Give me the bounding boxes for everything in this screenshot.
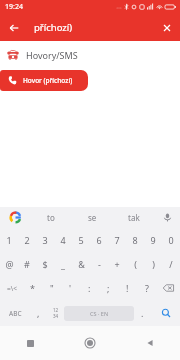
button[interactable]: 5 bbox=[72, 228, 90, 252]
button[interactable]: + bbox=[108, 252, 126, 276]
button[interactable]: =\< bbox=[0, 276, 23, 300]
button[interactable]: 7 bbox=[108, 228, 126, 252]
button[interactable]: 9 bbox=[144, 228, 162, 252]
staticText: & bbox=[78, 258, 85, 270]
staticText: se bbox=[88, 212, 97, 223]
staticText: 8 bbox=[132, 234, 138, 246]
staticText: 19:24 bbox=[5, 2, 23, 12]
staticText: Hovor (příchozí) bbox=[23, 76, 73, 85]
staticText: # bbox=[24, 258, 30, 270]
button[interactable]: ( bbox=[126, 252, 144, 276]
staticText: =\< bbox=[7, 284, 17, 293]
button[interactable]: ) bbox=[144, 252, 162, 276]
button[interactable]: @ bbox=[0, 252, 18, 276]
staticText: to bbox=[47, 212, 55, 223]
button[interactable]: ' bbox=[61, 276, 80, 300]
button[interactable]: Voice input bbox=[154, 207, 180, 228]
staticText: ( bbox=[134, 258, 137, 270]
staticText: ' bbox=[69, 282, 72, 294]
staticText: CS · EN bbox=[90, 310, 109, 317]
button[interactable]: 6 bbox=[90, 228, 108, 252]
button[interactable]: Back bbox=[120, 326, 180, 360]
staticText: * bbox=[30, 282, 35, 294]
button[interactable]: 0 bbox=[162, 228, 180, 252]
button[interactable]: ? bbox=[137, 276, 156, 300]
staticText: : bbox=[88, 282, 91, 294]
button[interactable]: . bbox=[134, 300, 151, 326]
button[interactable]: Backspace bbox=[156, 276, 180, 300]
staticText: 7 bbox=[114, 234, 120, 246]
staticText: 3 bbox=[42, 234, 48, 246]
staticText: ABC bbox=[9, 309, 22, 318]
staticText: " bbox=[50, 282, 54, 294]
button[interactable]: 3 bbox=[36, 228, 54, 252]
button[interactable]: Google bbox=[0, 207, 30, 228]
button[interactable]: Hovory/SMS bbox=[0, 46, 180, 64]
staticText: 9 bbox=[150, 234, 156, 246]
staticText: 34 bbox=[53, 313, 59, 319]
staticText: tak bbox=[128, 212, 140, 223]
button[interactable]: - bbox=[90, 252, 108, 276]
button[interactable]: Home bbox=[60, 326, 120, 360]
button[interactable]: _ bbox=[54, 252, 72, 276]
button[interactable]: Clear bbox=[153, 14, 180, 41]
button[interactable]: 1 bbox=[0, 228, 18, 252]
staticText: 4 bbox=[60, 234, 66, 246]
button[interactable]: Back bbox=[0, 14, 27, 41]
button[interactable]: ; bbox=[99, 276, 118, 300]
button[interactable]: : bbox=[80, 276, 99, 300]
staticText: / bbox=[169, 258, 173, 270]
staticText: 12 bbox=[53, 307, 59, 313]
button[interactable]: CS · EN bbox=[64, 306, 134, 321]
staticText: 5 bbox=[78, 234, 84, 246]
button[interactable]: Hovor (příchozí) bbox=[0, 70, 88, 91]
button[interactable]: to bbox=[30, 207, 72, 228]
staticText: $ bbox=[42, 258, 48, 270]
staticText: 0 bbox=[168, 234, 174, 246]
button[interactable]: $ bbox=[36, 252, 54, 276]
staticText: příchozí) bbox=[34, 21, 73, 34]
button[interactable]: # bbox=[18, 252, 36, 276]
staticText: ) bbox=[152, 258, 155, 270]
button[interactable]: / bbox=[162, 252, 180, 276]
button[interactable]: tak bbox=[113, 207, 154, 228]
button[interactable]: * bbox=[23, 276, 42, 300]
button[interactable]: 8 bbox=[126, 228, 144, 252]
button[interactable]: & bbox=[72, 252, 90, 276]
staticText: 1 bbox=[6, 234, 12, 246]
staticText: 6 bbox=[96, 234, 102, 246]
staticText: _ bbox=[61, 258, 65, 270]
button[interactable]: Recents bbox=[0, 326, 60, 360]
button[interactable]: Search bbox=[151, 300, 180, 326]
staticText: + bbox=[114, 258, 120, 270]
button[interactable]: 2 bbox=[18, 228, 36, 252]
staticText: @ bbox=[5, 258, 14, 270]
staticText: ! bbox=[126, 282, 129, 294]
staticText: Hovory/SMS bbox=[26, 49, 78, 61]
button[interactable]: ABC bbox=[0, 300, 30, 326]
staticText: . bbox=[141, 307, 144, 319]
button[interactable]: " bbox=[42, 276, 61, 300]
staticText: ? bbox=[145, 282, 149, 294]
staticText: ; bbox=[107, 282, 110, 294]
button[interactable]: ! bbox=[118, 276, 137, 300]
button[interactable]: 4 bbox=[54, 228, 72, 252]
staticText: - bbox=[98, 258, 101, 270]
button[interactable]: se bbox=[72, 207, 113, 228]
button[interactable]: Numbers bbox=[47, 300, 64, 326]
staticText: , bbox=[37, 307, 40, 319]
staticText: 2 bbox=[24, 234, 30, 246]
button[interactable]: , bbox=[30, 300, 47, 326]
